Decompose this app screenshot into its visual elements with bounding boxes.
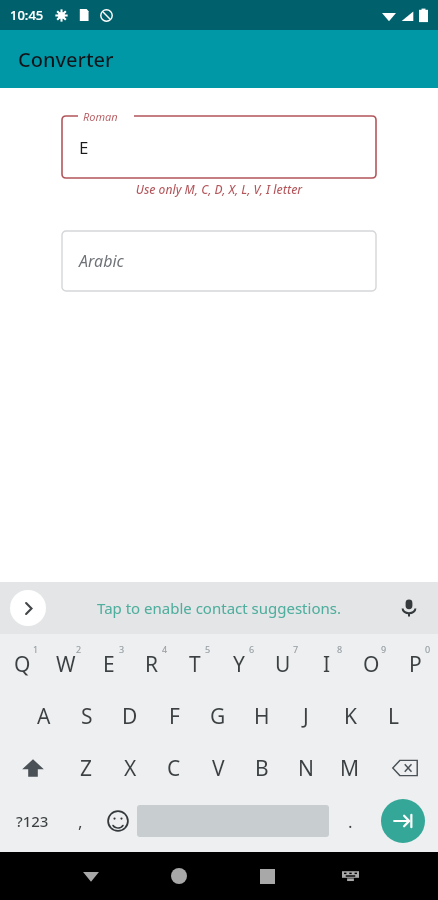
staticText: E bbox=[79, 136, 89, 159]
button[interactable]: Enter bbox=[371, 794, 434, 848]
staticText: 6 bbox=[249, 643, 255, 655]
staticText: Use only M, C, D, X, L, V, I letter bbox=[0, 181, 438, 197]
staticText: Z bbox=[80, 754, 93, 783]
button[interactable]: E bbox=[62, 116, 376, 178]
button[interactable]: Back bbox=[47, 852, 135, 900]
staticText: 10:45 bbox=[10, 6, 44, 24]
staticText: , bbox=[78, 810, 83, 833]
button[interactable]: Expand suggestions bbox=[10, 590, 46, 626]
button[interactable]: J bbox=[284, 690, 328, 742]
staticText: F bbox=[169, 702, 180, 731]
button[interactable]: F bbox=[152, 690, 196, 742]
staticText: 9 bbox=[381, 643, 387, 655]
staticText: B bbox=[255, 754, 269, 783]
staticText: T bbox=[189, 650, 201, 679]
button[interactable]: Arabic bbox=[62, 231, 376, 291]
staticText: Arabic bbox=[79, 250, 124, 272]
staticText: L bbox=[388, 702, 400, 731]
staticText: G bbox=[210, 702, 226, 731]
staticText: ?123 bbox=[16, 811, 49, 831]
button[interactable]: Shift bbox=[1, 742, 65, 794]
staticText: A bbox=[37, 702, 51, 731]
staticText: J bbox=[303, 702, 309, 731]
button[interactable]: R bbox=[130, 638, 173, 690]
button[interactable]: B bbox=[240, 742, 284, 794]
staticText: C bbox=[167, 754, 181, 783]
button[interactable]: Home bbox=[135, 852, 223, 900]
staticText: Q bbox=[14, 650, 31, 679]
staticText: W bbox=[56, 650, 76, 679]
button[interactable]: I bbox=[305, 638, 349, 690]
staticText: D bbox=[122, 702, 138, 731]
staticText: 4 bbox=[162, 643, 168, 655]
button[interactable]: E bbox=[87, 638, 130, 690]
staticText: V bbox=[212, 754, 225, 783]
staticText: H bbox=[254, 702, 270, 731]
button[interactable]: Q bbox=[1, 638, 44, 690]
staticText: 2 bbox=[76, 643, 82, 655]
button[interactable]: Recent apps bbox=[223, 852, 311, 900]
staticText: P bbox=[409, 650, 422, 679]
button[interactable]: D bbox=[108, 690, 152, 742]
button[interactable]: Y bbox=[217, 638, 261, 690]
button[interactable]: . bbox=[329, 794, 371, 848]
button[interactable]: C bbox=[152, 742, 196, 794]
button[interactable]: Z bbox=[65, 742, 108, 794]
staticText: U bbox=[275, 650, 291, 679]
button[interactable]: S bbox=[65, 690, 108, 742]
staticText: O bbox=[363, 650, 380, 679]
button[interactable]: P bbox=[393, 638, 437, 690]
button[interactable]: H bbox=[240, 690, 284, 742]
staticText: N bbox=[298, 754, 314, 783]
button[interactable]: Voice input bbox=[394, 593, 424, 623]
staticText: 8 bbox=[337, 643, 343, 655]
staticText: 1 bbox=[33, 643, 39, 655]
button[interactable]: T bbox=[173, 638, 217, 690]
button[interactable]: Backspace bbox=[372, 742, 437, 794]
staticText: R bbox=[145, 650, 159, 679]
button[interactable]: L bbox=[372, 690, 416, 742]
button[interactable]: K bbox=[328, 690, 372, 742]
staticText: M bbox=[340, 754, 360, 783]
button[interactable]: Switch keyboard bbox=[311, 852, 390, 900]
staticText: E bbox=[103, 650, 115, 679]
button[interactable]: , bbox=[61, 794, 99, 848]
button[interactable]: X bbox=[108, 742, 152, 794]
staticText: 3 bbox=[119, 643, 125, 655]
staticText: X bbox=[124, 754, 137, 783]
button[interactable]: A bbox=[22, 690, 65, 742]
button[interactable]: ?123 bbox=[4, 794, 61, 848]
button[interactable]: Tap to enable contact suggestions. bbox=[97, 598, 341, 618]
staticText: 0 bbox=[425, 643, 431, 655]
button[interactable]: O bbox=[349, 638, 393, 690]
staticText: Converter bbox=[18, 46, 114, 73]
button[interactable]: M bbox=[328, 742, 372, 794]
button[interactable]: N bbox=[284, 742, 328, 794]
button[interactable]: V bbox=[196, 742, 240, 794]
staticText: K bbox=[344, 702, 357, 731]
button[interactable]: W bbox=[44, 638, 87, 690]
button[interactable]: U bbox=[261, 638, 305, 690]
staticText: 5 bbox=[205, 643, 211, 655]
button[interactable]: Emoji bbox=[99, 794, 137, 848]
staticText: S bbox=[81, 702, 93, 731]
staticText: 7 bbox=[293, 643, 299, 655]
staticText: Y bbox=[233, 650, 245, 679]
button[interactable]: G bbox=[196, 690, 240, 742]
staticText: I bbox=[323, 650, 331, 679]
staticText: . bbox=[348, 810, 353, 833]
staticText: Roman bbox=[83, 109, 118, 124]
